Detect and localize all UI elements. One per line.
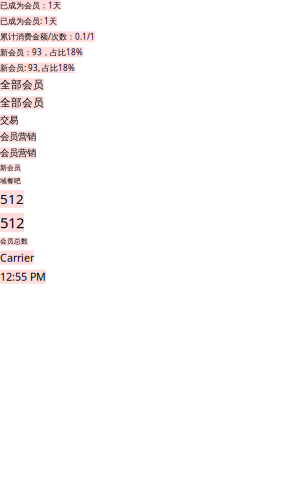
staticText: 新会员 bbox=[0, 164, 21, 172]
staticText: 累计消费金额/次数：0.1/1 bbox=[0, 31, 95, 42]
staticText: 交易 bbox=[0, 114, 18, 126]
staticText: 512 bbox=[0, 190, 24, 208]
staticText: 会员营销 bbox=[0, 131, 36, 142]
staticText: 域餐吧 bbox=[0, 177, 21, 185]
staticText: 新会员：93，占比18% bbox=[0, 47, 83, 57]
staticText: 会员营销 bbox=[0, 147, 36, 159]
staticText: 12:55 PM bbox=[0, 270, 46, 284]
staticText: 新会员: 93, 占比18% bbox=[0, 62, 75, 73]
staticText: 会员总数 bbox=[0, 237, 28, 245]
staticText: 已成为会员: 1天 bbox=[0, 16, 57, 26]
staticText: 全部会员 bbox=[0, 96, 44, 109]
staticText: Carrier bbox=[0, 250, 34, 265]
staticText: 全部会员 bbox=[0, 78, 44, 91]
staticText: 已成为会员：1天 bbox=[0, 0, 61, 11]
staticText: 512 bbox=[0, 213, 24, 232]
